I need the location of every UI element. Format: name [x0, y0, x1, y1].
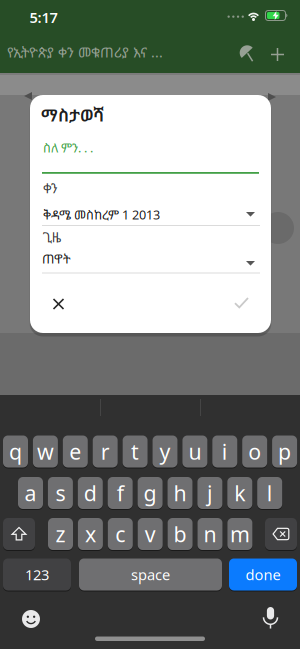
staticText: የኢትዮጵያ ቀን መቁጠሪያ እና ...	[7, 42, 163, 62]
staticText: i	[222, 437, 228, 466]
staticText: h	[173, 479, 186, 507]
staticText: a	[24, 479, 36, 507]
staticText: v	[145, 520, 156, 548]
staticText: l	[267, 479, 273, 507]
staticText: t	[131, 437, 139, 466]
staticText: ጊዜ	[43, 228, 61, 246]
staticText: f	[117, 479, 124, 507]
staticText: s	[55, 479, 65, 507]
staticText: p	[278, 437, 291, 466]
staticText: 123	[25, 565, 49, 584]
staticText: x	[85, 520, 96, 548]
staticText: k	[234, 479, 245, 507]
staticText: ማስታወሻ	[41, 103, 104, 127]
staticText: c	[115, 520, 125, 548]
staticText: done	[245, 565, 280, 584]
staticText: g	[144, 479, 157, 507]
staticText: q	[9, 437, 22, 466]
staticText: ቅዳሜ መስከረም 1 2013	[43, 206, 160, 223]
staticText: ጠዋት	[42, 250, 71, 267]
staticText: u	[188, 437, 201, 466]
staticText: w	[37, 437, 54, 466]
staticText: j	[207, 479, 213, 507]
staticText: b	[174, 520, 187, 548]
staticText: e	[69, 437, 81, 466]
staticText: ቀን	[43, 179, 58, 197]
staticText: n	[203, 520, 216, 548]
staticText: d	[84, 479, 97, 507]
staticText: r	[101, 437, 110, 466]
staticText: space	[131, 565, 170, 584]
staticText: ስለ ምን. . .	[43, 139, 93, 156]
staticText: z	[55, 520, 65, 548]
staticText: o	[248, 437, 261, 466]
staticText: 5:17	[29, 7, 57, 27]
staticText: m	[230, 520, 250, 548]
staticText: y	[159, 437, 170, 466]
